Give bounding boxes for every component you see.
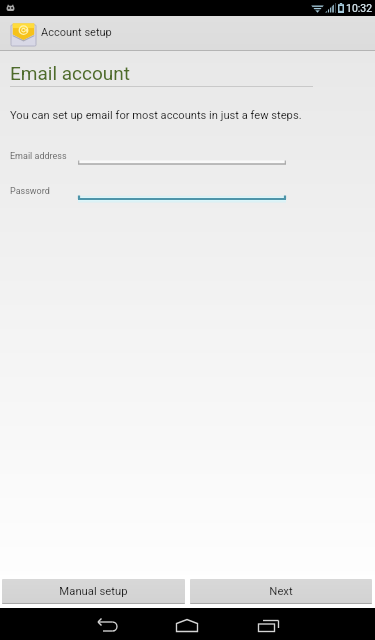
button[interactable]: Back [78, 608, 138, 640]
button[interactable]: Password [0, 180, 375, 202]
staticText: Email account [10, 62, 130, 84]
staticText: Password [10, 186, 50, 197]
button[interactable]: Recents [239, 608, 299, 640]
button[interactable]: Email address [0, 145, 375, 167]
staticText: You can set up email for most accounts i… [10, 109, 302, 122]
staticText: 10:32 [346, 2, 373, 14]
button[interactable]: Next [190, 579, 372, 604]
staticText: Account setup [41, 26, 112, 39]
button[interactable]: Home [157, 608, 217, 640]
staticText: Email address [10, 151, 67, 162]
staticText: Next [269, 585, 293, 598]
staticText: Manual setup [59, 585, 128, 598]
button[interactable]: Manual setup [2, 579, 185, 604]
